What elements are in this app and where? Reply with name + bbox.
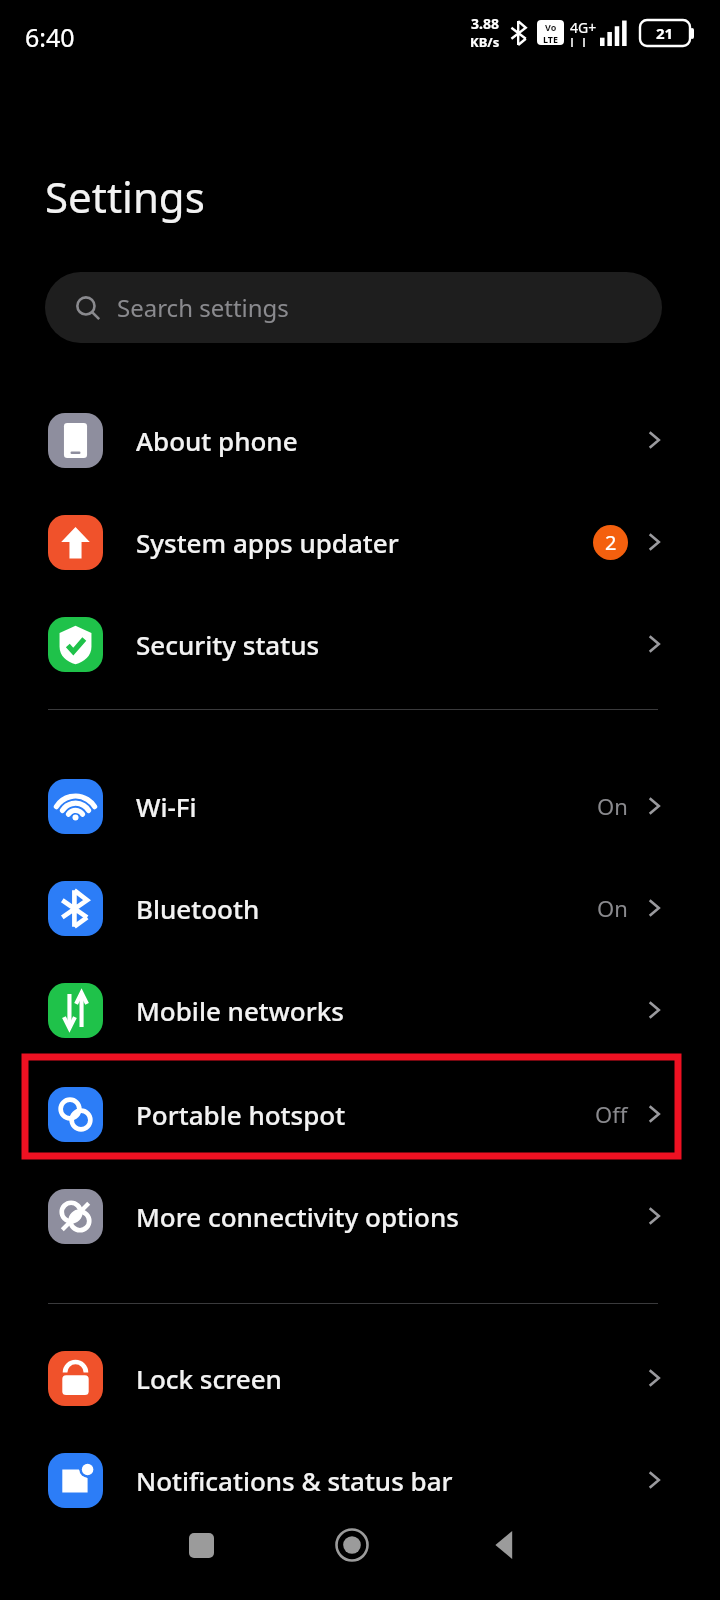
button[interactable]: Lock screen bbox=[20, 1335, 680, 1421]
button[interactable]: More connectivity options bbox=[20, 1173, 680, 1259]
staticText: LTE bbox=[543, 33, 559, 45]
staticText: 3.88 bbox=[471, 14, 499, 33]
staticText: Notifications & status bar bbox=[136, 1463, 642, 1498]
staticText: KB/s bbox=[470, 33, 500, 51]
staticText: Vo bbox=[545, 21, 557, 33]
staticText: Security status bbox=[136, 627, 642, 662]
staticText: 21 bbox=[656, 23, 674, 43]
staticText: Wi-Fi bbox=[136, 789, 597, 824]
staticText: 4G+ bbox=[570, 18, 597, 37]
staticText: Lock screen bbox=[136, 1361, 642, 1396]
staticText: Mobile networks bbox=[136, 993, 642, 1028]
staticText: 2 bbox=[605, 529, 617, 556]
staticText: Settings bbox=[45, 168, 205, 225]
button[interactable]: Security status bbox=[20, 601, 680, 687]
button[interactable]: Mobile networks bbox=[20, 967, 680, 1053]
button[interactable]: Search settings bbox=[45, 272, 662, 343]
staticText: 6:40 bbox=[25, 20, 75, 54]
button[interactable]: Wi-Fi bbox=[20, 763, 680, 849]
staticText: Portable hotspot bbox=[136, 1097, 595, 1132]
button[interactable]: Portable hotspot bbox=[20, 1071, 680, 1157]
staticText: On bbox=[597, 893, 628, 923]
button[interactable]: System apps updater bbox=[20, 499, 680, 585]
button[interactable]: Back bbox=[485, 1524, 527, 1566]
staticText: Search settings bbox=[117, 291, 289, 324]
button[interactable]: Home bbox=[331, 1524, 373, 1566]
staticText: About phone bbox=[136, 423, 642, 458]
button[interactable]: Notifications & status bar bbox=[20, 1437, 680, 1523]
staticText: On bbox=[597, 791, 628, 821]
staticText: More connectivity options bbox=[136, 1199, 642, 1234]
staticText: Off bbox=[595, 1099, 628, 1129]
button[interactable]: About phone bbox=[20, 397, 680, 483]
staticText: System apps updater bbox=[136, 525, 593, 560]
staticText: Bluetooth bbox=[136, 891, 597, 926]
button[interactable]: Bluetooth bbox=[20, 865, 680, 951]
button[interactable]: Recent apps bbox=[180, 1524, 222, 1566]
